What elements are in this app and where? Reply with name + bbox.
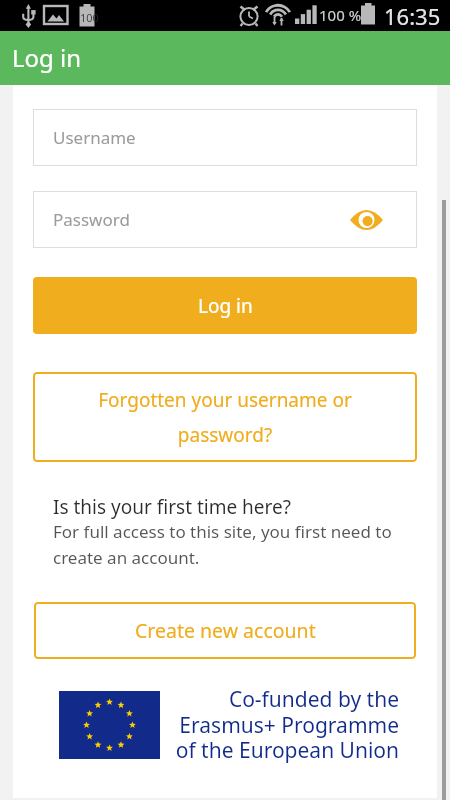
staticText: 100 <box>80 10 99 25</box>
button[interactable]: Forgotten your username or password? <box>33 372 417 462</box>
staticText: Co-funded by the Erasmus+ Programme of t… <box>170 685 399 764</box>
staticText: Create new account <box>135 617 316 644</box>
button[interactable]: Log in <box>33 277 417 334</box>
button[interactable]: Create new account <box>34 602 416 659</box>
staticText: Username <box>53 126 136 149</box>
staticText: Password <box>53 208 130 231</box>
button[interactable]: Log in <box>0 31 450 85</box>
staticText: Log in <box>198 293 253 319</box>
button[interactable]: Show password <box>350 210 383 230</box>
button[interactable]: Username <box>33 109 417 166</box>
staticText: Is this your first time here? <box>53 494 291 520</box>
button[interactable]: Password <box>33 191 417 248</box>
staticText: Log in <box>12 41 82 74</box>
staticText: 16:35 <box>384 1 441 31</box>
staticText: 100 % <box>319 5 362 25</box>
staticText: For full access to this site, you first … <box>53 520 398 569</box>
staticText: Forgotten your username or password? <box>90 387 360 448</box>
